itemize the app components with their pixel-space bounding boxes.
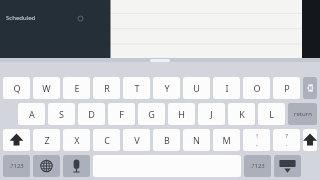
button[interactable]: Z <box>33 129 60 151</box>
staticText: .?123 <box>250 162 265 170</box>
staticText: I <box>225 82 229 94</box>
button[interactable]: Dictate <box>63 155 90 177</box>
button[interactable]: Hide keyboard <box>274 155 301 177</box>
button[interactable]: Delete <box>303 77 317 99</box>
button[interactable]: Resize keyboard <box>150 59 170 62</box>
staticText: O <box>253 82 261 94</box>
button[interactable]: return <box>288 103 317 125</box>
button[interactable]: M <box>213 129 240 151</box>
staticText: S <box>59 108 64 120</box>
button[interactable]: E <box>63 77 90 99</box>
button[interactable]: .?123 <box>244 155 271 177</box>
staticText: T <box>134 82 140 94</box>
button[interactable]: F <box>108 103 135 125</box>
staticText: .?123 <box>9 162 24 170</box>
staticText: D <box>88 108 95 120</box>
staticText: Scheduled <box>6 14 36 22</box>
button[interactable]: Scheduled <box>0 10 110 26</box>
button[interactable]: ! , <box>243 129 270 151</box>
staticText: A <box>29 108 35 120</box>
button[interactable]: Q <box>3 77 30 99</box>
staticText: F <box>119 108 124 120</box>
button[interactable]: Shift <box>303 129 317 151</box>
button[interactable]: I <box>213 77 240 99</box>
staticText: U <box>193 82 200 94</box>
button[interactable]: Y <box>153 77 180 99</box>
button[interactable]: A <box>18 103 45 125</box>
button[interactable]: C <box>93 129 120 151</box>
button[interactable]: X <box>63 129 90 151</box>
staticText: K <box>239 108 245 120</box>
button[interactable]: S <box>48 103 75 125</box>
staticText: R <box>104 82 110 94</box>
staticText: H <box>178 108 185 120</box>
button[interactable]: ? . <box>273 129 300 151</box>
staticText: X <box>74 134 80 146</box>
staticText: M <box>222 134 231 146</box>
staticText: Z <box>44 134 50 146</box>
staticText: C <box>104 134 110 146</box>
other: Scheduled badge <box>78 16 83 21</box>
button[interactable]: G <box>138 103 165 125</box>
button[interactable]: K <box>228 103 255 125</box>
button[interactable]: .?123 <box>3 155 30 177</box>
staticText: Q <box>13 82 21 94</box>
staticText: W <box>42 82 51 94</box>
staticText: G <box>148 108 155 120</box>
button[interactable]: D <box>78 103 105 125</box>
button[interactable]: H <box>168 103 195 125</box>
staticText: J <box>210 108 213 120</box>
staticText: V <box>134 134 140 146</box>
staticText: ? . <box>285 132 288 148</box>
button[interactable]: U <box>183 77 210 99</box>
staticText: L <box>269 108 274 120</box>
staticText: Y <box>164 82 170 94</box>
staticText: ! , <box>256 132 258 148</box>
button[interactable]: N <box>183 129 210 151</box>
button[interactable]: T <box>123 77 150 99</box>
staticText: return <box>294 110 312 118</box>
button[interactable]: W <box>33 77 60 99</box>
button[interactable]: O <box>243 77 270 99</box>
button[interactable]: P <box>273 77 300 99</box>
button[interactable]: Shift <box>3 129 30 151</box>
button[interactable]: R <box>93 77 120 99</box>
staticText: P <box>284 82 290 94</box>
button[interactable]: L <box>258 103 285 125</box>
button[interactable]: B <box>153 129 180 151</box>
button[interactable]: J <box>198 103 225 125</box>
staticText: N <box>193 134 200 146</box>
button[interactable]: V <box>123 129 150 151</box>
staticText: B <box>164 134 170 146</box>
staticText: E <box>74 82 80 94</box>
button[interactable]: Change language <box>33 155 60 177</box>
